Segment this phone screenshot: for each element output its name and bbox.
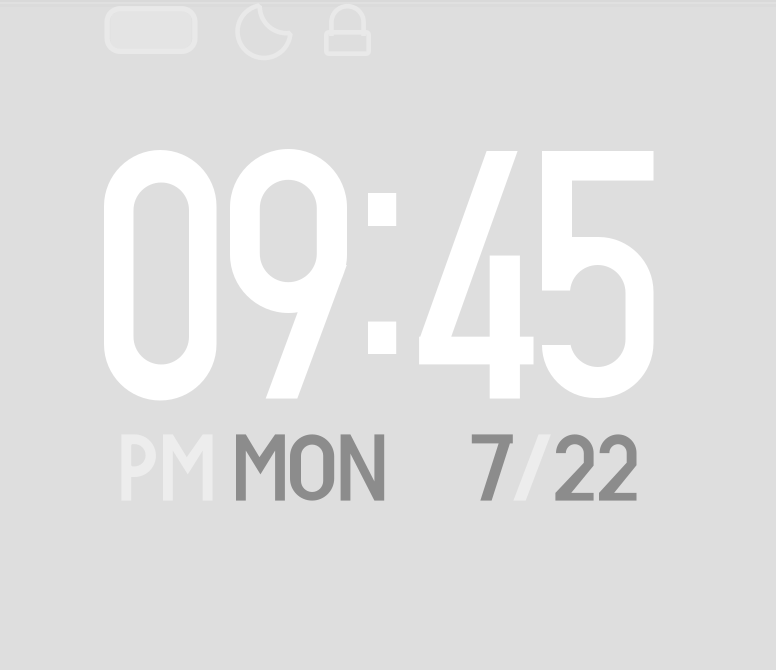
button[interactable]: Night mode bbox=[234, 1, 294, 59]
button[interactable]: Lock screen bbox=[319, 0, 375, 58]
button[interactable]: Display brightness bbox=[101, 1, 201, 59]
